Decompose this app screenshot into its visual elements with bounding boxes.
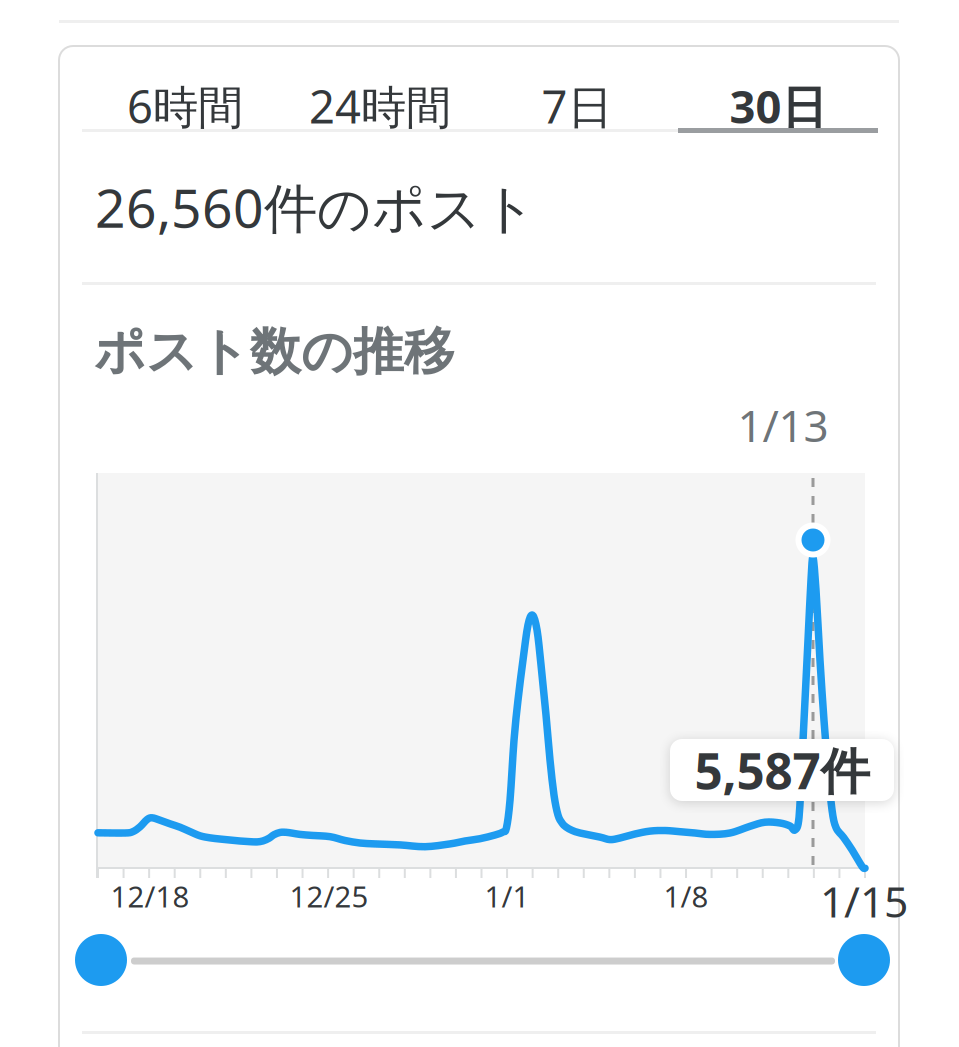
staticText: 1/8: [663, 876, 708, 915]
staticText: 12/25: [289, 876, 368, 915]
staticText: 12/18: [110, 876, 189, 915]
staticText: 1/13: [737, 396, 828, 454]
button[interactable]: 6時間: [90, 64, 280, 148]
staticText: 26,560件のポスト: [95, 172, 537, 242]
staticText: 1/15: [820, 873, 908, 929]
staticText: 6時間: [127, 76, 243, 136]
staticText: 5,587件: [694, 737, 869, 803]
button[interactable]: 7日: [482, 64, 672, 148]
button[interactable]: Range end: [838, 934, 890, 986]
button[interactable]: 24時間: [285, 64, 475, 148]
staticText: 7日: [541, 76, 612, 136]
staticText: ポスト数の推移: [94, 321, 455, 383]
staticText: 30日: [729, 76, 826, 136]
staticText: 24時間: [309, 76, 451, 136]
button[interactable]: 30日: [678, 64, 878, 148]
staticText: 1/1: [484, 876, 529, 915]
button[interactable]: Range start: [75, 934, 127, 986]
